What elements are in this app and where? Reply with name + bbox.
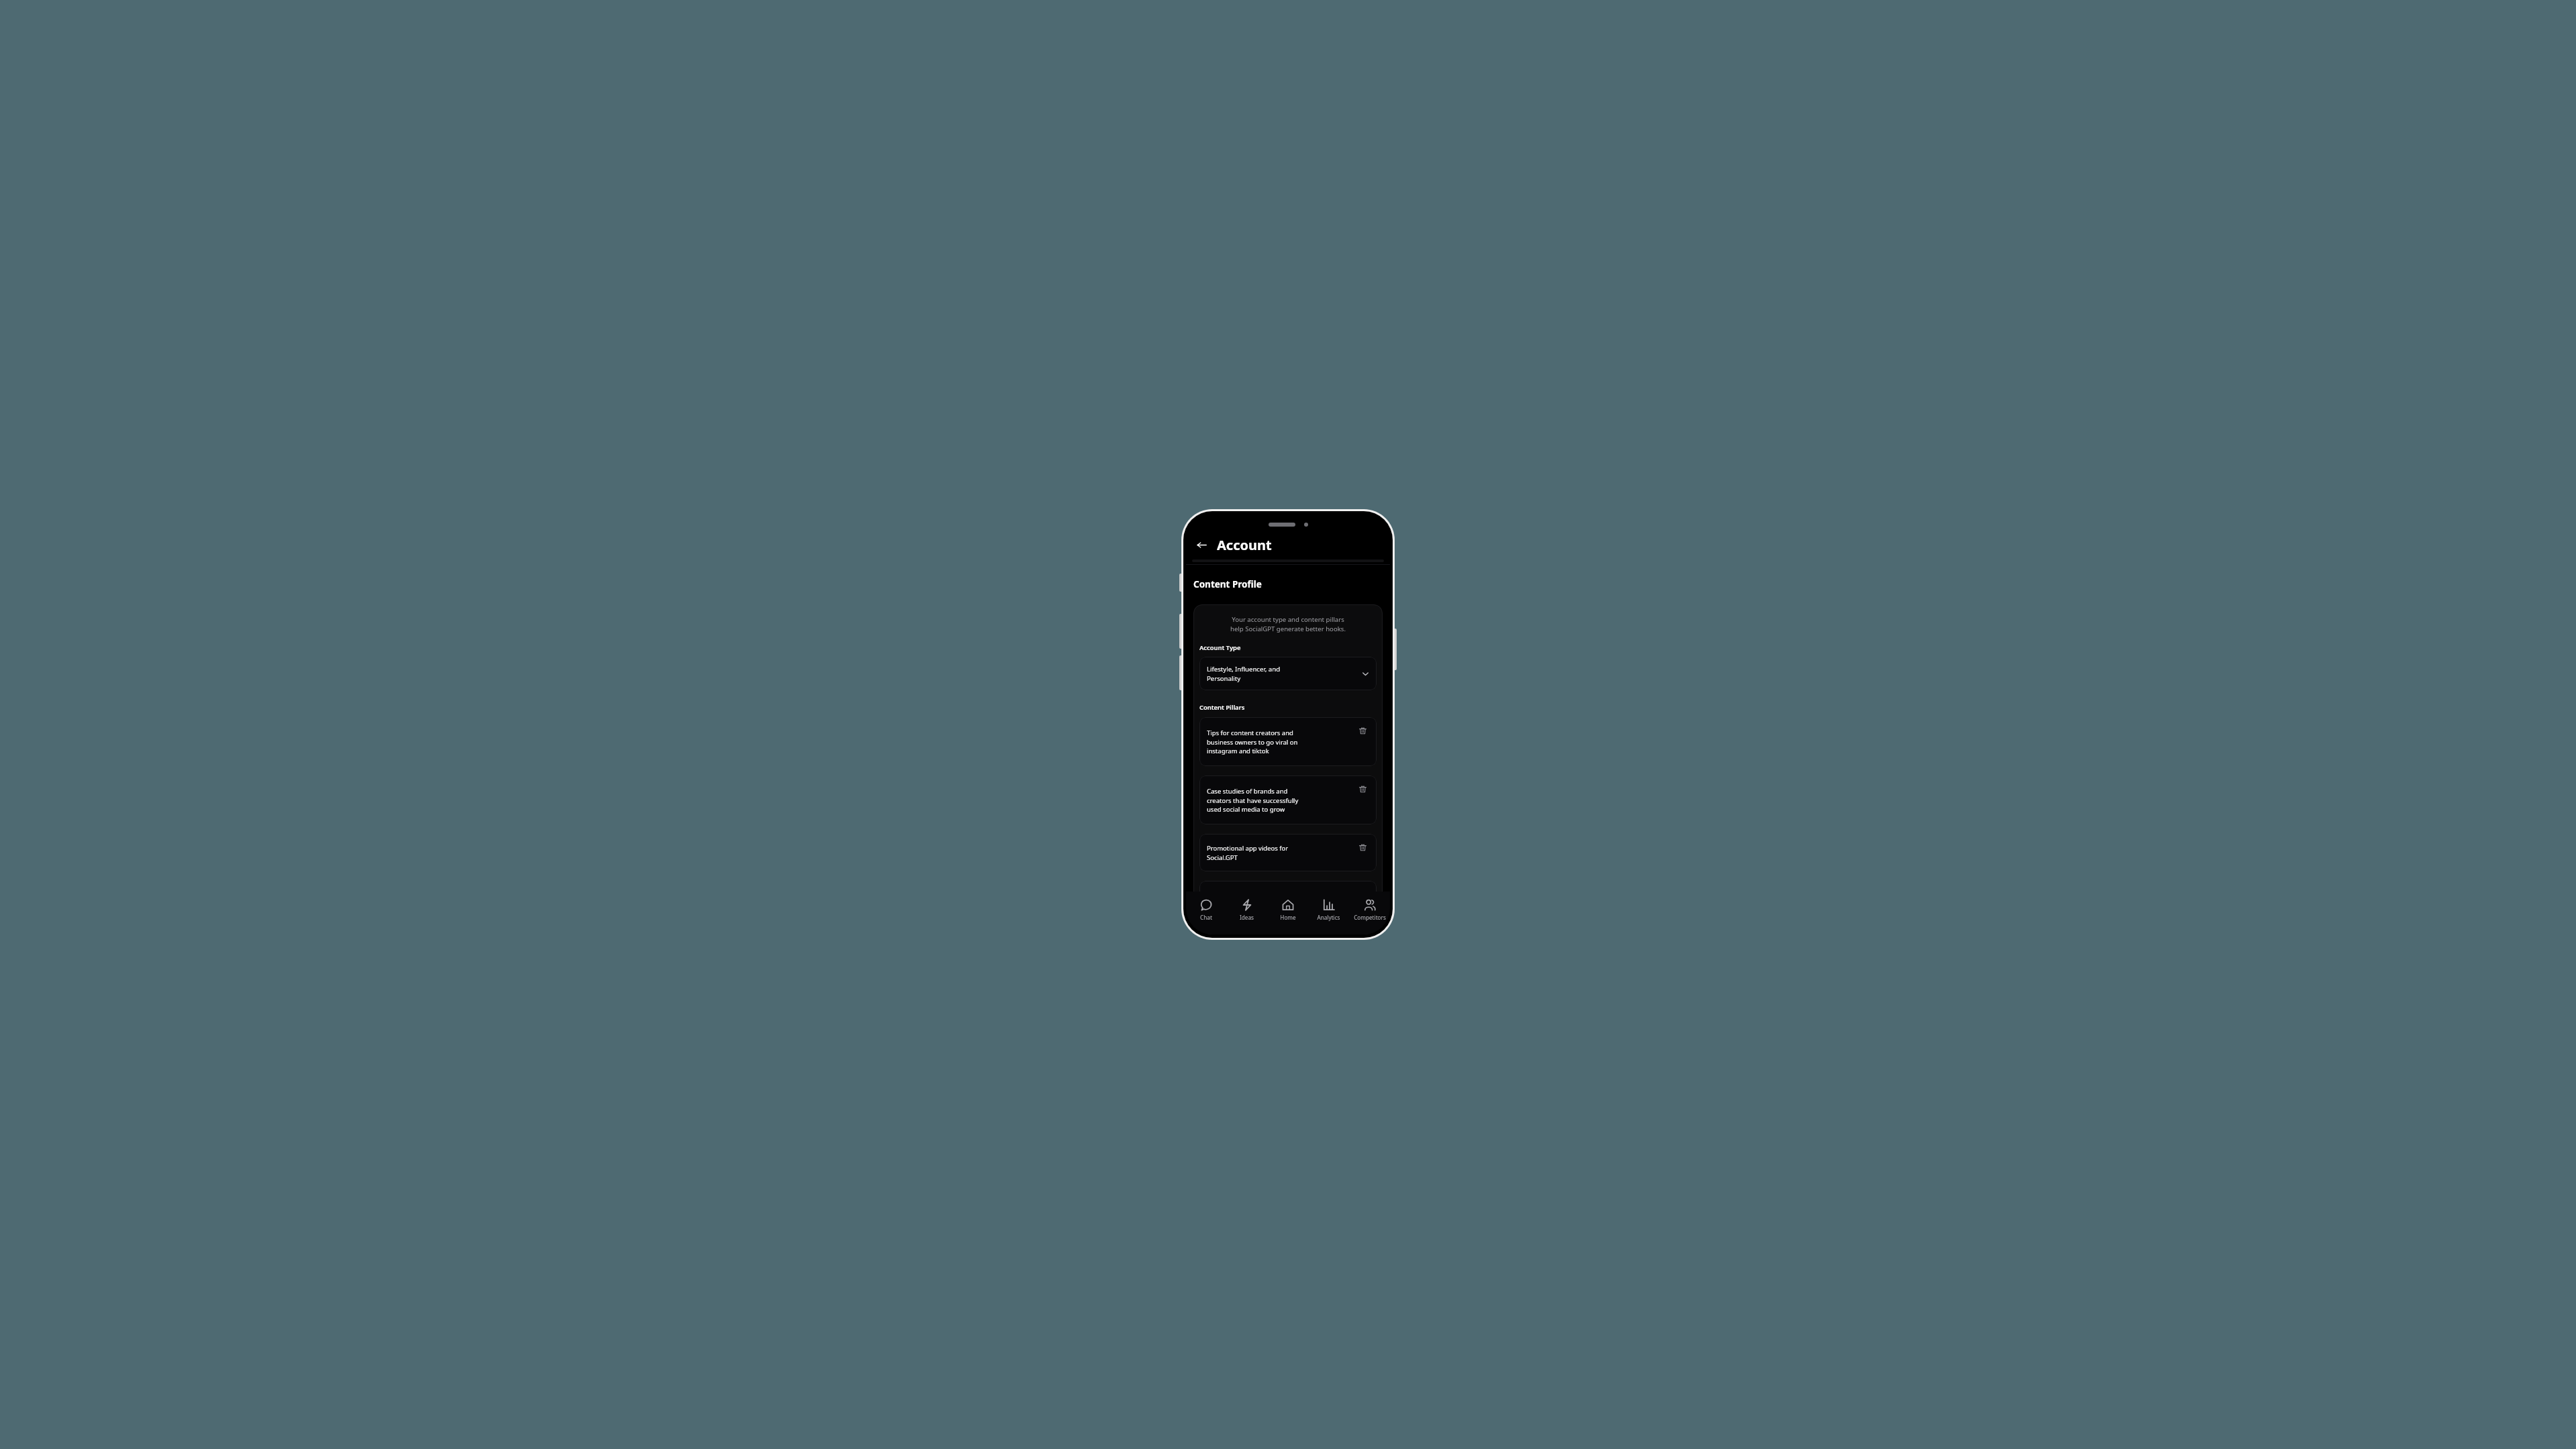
button[interactable]: Lifestyle, Influencer, and Personality (1199, 657, 1377, 690)
staticText: Lifestyle, Influencer, and Personality (1207, 665, 1362, 682)
button[interactable]: Back (1191, 535, 1212, 555)
button[interactable]: Promotional app videos for Social.GPT (1199, 834, 1377, 871)
button[interactable]: Delete pillar (1356, 841, 1369, 854)
staticText: Promotional app videos for Social.GPT (1207, 844, 1352, 861)
button[interactable]: Home (1267, 896, 1308, 924)
button[interactable]: Ideas (1226, 896, 1267, 924)
staticText: Account (1217, 536, 1272, 554)
button[interactable]: Delete pillar (1356, 724, 1369, 737)
staticText: Chat (1200, 914, 1212, 921)
button[interactable]: Case studies of brands and creators that… (1199, 775, 1377, 824)
button[interactable]: Tips for content creators and business o… (1199, 717, 1377, 766)
button[interactable]: Chat (1186, 896, 1226, 924)
button[interactable]: Analytics (1308, 896, 1349, 924)
staticText: Home (1280, 914, 1296, 921)
button[interactable] (1199, 881, 1377, 918)
staticText: Content Pillars (1199, 703, 1245, 712)
staticText: Your account type and content pillars he… (1199, 615, 1377, 633)
staticText: Ideas (1240, 914, 1254, 921)
button[interactable]: Delete pillar (1356, 782, 1369, 796)
staticText: Account Type (1199, 643, 1241, 652)
staticText: Content Profile (1193, 578, 1262, 590)
staticText: Case studies of brands and creators that… (1207, 787, 1352, 813)
staticText: Tips for content creators and business o… (1207, 729, 1352, 755)
staticText: Competitors (1354, 914, 1386, 921)
button[interactable]: Competitors (1349, 896, 1390, 924)
staticText: Analytics (1317, 914, 1340, 921)
